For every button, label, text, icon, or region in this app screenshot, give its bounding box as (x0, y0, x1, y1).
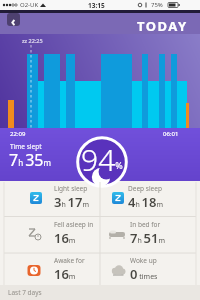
staticText: Light sleep (54, 184, 88, 193)
staticText: 16m (54, 265, 76, 283)
staticText: 0 times (130, 265, 158, 283)
staticText: 06:01 (163, 130, 179, 138)
staticText: 16m (54, 229, 76, 247)
button[interactable]: Light sleep (0, 181, 96, 215)
staticText: O2-UK (20, 1, 39, 9)
staticText: Awake for (54, 256, 85, 265)
staticText: Last 7 days (8, 288, 42, 297)
staticText: 4h 18m (128, 193, 163, 211)
staticText: 13:15 (88, 1, 105, 10)
button[interactable]: Awake for (0, 253, 96, 287)
staticText: 7h 35m (9, 149, 51, 171)
staticText: 22:09 (10, 130, 26, 138)
button[interactable]: Woke up (100, 253, 196, 287)
button[interactable]: Fell asleep in (0, 217, 96, 251)
staticText: Fell asleep in (54, 220, 94, 229)
button[interactable]: Deep sleep (100, 181, 196, 215)
staticText: ‹ (11, 13, 16, 26)
staticText: zz 22:25 (22, 37, 43, 44)
staticText: Time slept (10, 142, 42, 151)
staticText: TODAY (137, 17, 188, 35)
staticText: 94% (81, 139, 123, 171)
button[interactable]: Last 7 days (0, 285, 200, 300)
button[interactable]: ‹ (7, 13, 20, 26)
staticText: Deep sleep (128, 184, 162, 193)
staticText: 7h 51m (130, 229, 165, 247)
staticText: 3h 17m (54, 193, 89, 211)
staticText: In bed for (130, 220, 161, 229)
staticText: Woke up (130, 256, 157, 265)
button[interactable]: TODAY (0, 17, 188, 35)
button[interactable]: In bed for (100, 217, 196, 251)
staticText: 75% (151, 1, 163, 9)
